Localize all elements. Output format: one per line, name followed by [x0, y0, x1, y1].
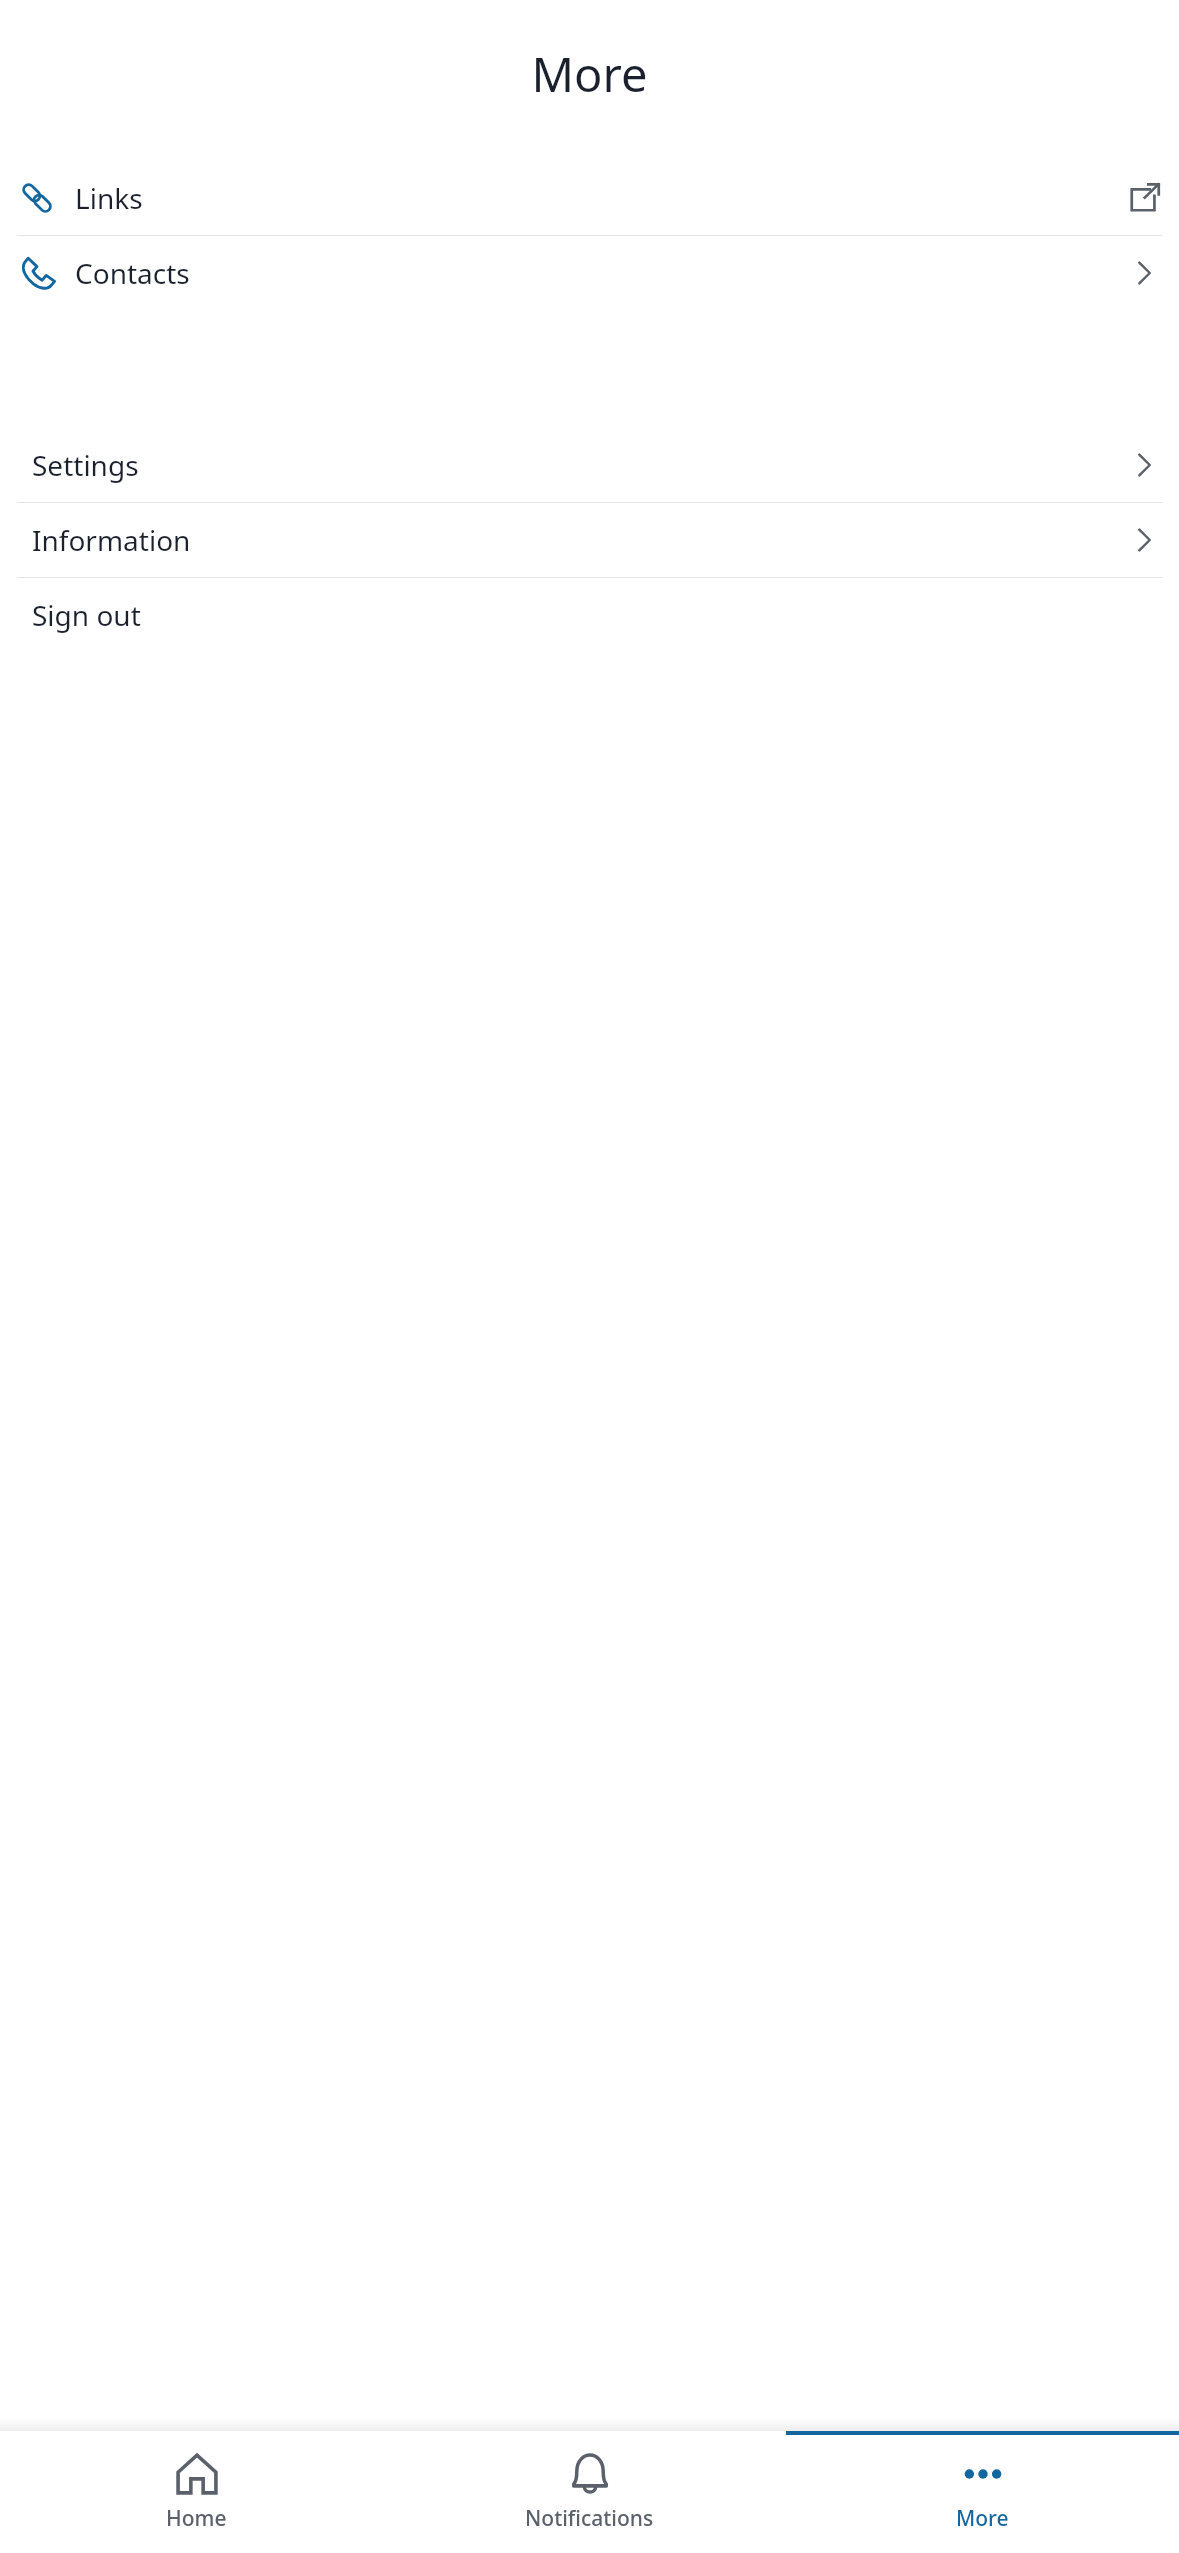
staticText: Notifications: [525, 2504, 654, 2533]
staticText: Links: [75, 179, 143, 217]
staticText: More: [956, 2504, 1009, 2533]
other: Open external link: [1126, 180, 1162, 216]
staticText: Contacts: [75, 254, 190, 292]
button[interactable]: Contacts: [0, 236, 1179, 310]
button[interactable]: Settings: [0, 428, 1179, 502]
button[interactable]: Home: [0, 2431, 393, 2553]
button[interactable]: Information: [0, 503, 1179, 577]
staticText: Home: [166, 2504, 227, 2533]
staticText: Settings: [32, 446, 139, 484]
button[interactable]: Links: [0, 161, 1179, 235]
button[interactable]: More: [786, 2431, 1179, 2553]
button[interactable]: Sign out: [0, 578, 1179, 652]
staticText: Sign out: [32, 596, 141, 634]
staticText: More: [531, 42, 648, 106]
button[interactable]: Notifications: [393, 2431, 786, 2553]
staticText: Information: [32, 521, 191, 559]
